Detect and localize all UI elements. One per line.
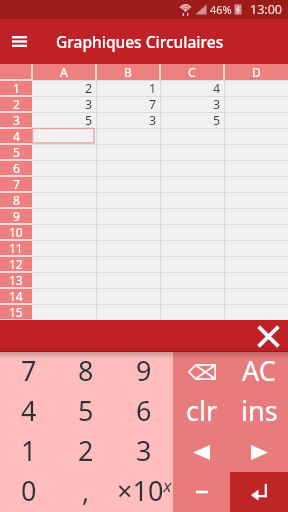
staticText: 4	[13, 128, 20, 144]
staticText: ,	[82, 472, 90, 509]
staticText: 6	[136, 392, 152, 429]
staticText: AC	[242, 352, 276, 389]
button[interactable]: 3	[0, 112, 32, 128]
staticText: 8	[78, 352, 94, 389]
staticText: B	[124, 64, 132, 80]
button[interactable]: 5	[32, 112, 96, 128]
button[interactable]: 5	[57, 392, 115, 432]
button[interactable]: 15	[0, 304, 32, 320]
staticText: 0	[21, 472, 37, 509]
button[interactable]: 4	[160, 80, 224, 96]
staticText: clr	[186, 392, 218, 429]
staticText: 13:00	[250, 1, 282, 18]
staticText: 1	[21, 432, 37, 469]
button[interactable]: AC	[230, 352, 288, 392]
staticText: 1	[13, 80, 20, 96]
button[interactable]: ,	[57, 472, 115, 512]
staticText: 46%	[210, 2, 232, 17]
staticText: 14	[9, 288, 23, 304]
staticText: C	[188, 64, 196, 80]
staticText: 5	[13, 144, 20, 160]
button[interactable]: Minus	[173, 472, 230, 512]
button[interactable]: B	[96, 64, 160, 80]
staticText: 7	[13, 176, 20, 192]
staticText: ins	[241, 392, 278, 429]
button[interactable]: ins	[230, 392, 288, 432]
button[interactable]: 7	[96, 96, 160, 112]
button[interactable]: 3	[32, 96, 96, 112]
staticText: 2	[85, 80, 93, 96]
staticText: 3	[149, 112, 157, 128]
staticText: 3	[13, 112, 20, 128]
staticText: 4	[213, 80, 221, 96]
button[interactable]: 2	[57, 432, 115, 472]
staticText: 11	[9, 240, 23, 256]
button[interactable]: C	[160, 64, 224, 80]
button[interactable]: 1	[0, 432, 57, 472]
button[interactable]: 7	[0, 176, 32, 192]
button[interactable]: ×10x	[115, 472, 173, 512]
staticText: 7	[149, 96, 157, 112]
button[interactable]: 0	[0, 472, 57, 512]
staticText: 13	[9, 272, 23, 288]
button[interactable]: 4	[0, 392, 57, 432]
button[interactable]: Move right	[230, 432, 288, 472]
button[interactable]: A	[32, 64, 96, 80]
button[interactable]: 8	[0, 192, 32, 208]
staticText: 6	[13, 160, 20, 176]
staticText: 4	[21, 392, 37, 429]
staticText: 5	[78, 392, 94, 429]
button[interactable]: 11	[0, 240, 32, 256]
staticText: ×10x	[117, 472, 172, 509]
button[interactable]: 1	[0, 80, 32, 96]
button[interactable]: 8	[57, 352, 115, 392]
staticText: 5	[85, 112, 93, 128]
staticText: Graphiques Circulaires	[56, 31, 224, 52]
button[interactable]: 12	[0, 256, 32, 272]
button[interactable]: 2	[32, 80, 96, 96]
button[interactable]: 9	[0, 208, 32, 224]
button[interactable]: 3	[115, 432, 173, 472]
staticText: 10	[9, 224, 23, 240]
button[interactable]: 6	[115, 392, 173, 432]
button[interactable]: 5	[0, 144, 32, 160]
button[interactable]: 3	[160, 96, 224, 112]
staticText: 12	[9, 256, 23, 272]
button[interactable]: 4	[0, 128, 32, 144]
button[interactable]: 2	[0, 96, 32, 112]
button[interactable]: Menu	[4, 26, 35, 57]
staticText: 9	[136, 352, 152, 389]
staticText: 15	[9, 304, 23, 320]
staticText: 2	[13, 96, 20, 112]
button[interactable]: 13	[0, 272, 32, 288]
staticText: 8	[13, 192, 20, 208]
button[interactable]: 14	[0, 288, 32, 304]
staticText: 1	[149, 80, 157, 96]
staticText: 3	[85, 96, 93, 112]
button[interactable]: 5	[160, 112, 224, 128]
staticText: 3	[136, 432, 152, 469]
button[interactable]: Enter	[230, 472, 288, 512]
button[interactable]: 3	[96, 112, 160, 128]
staticText: A	[60, 64, 68, 80]
button[interactable]: Backspace	[173, 352, 230, 392]
button[interactable]: Move left	[173, 432, 230, 472]
button[interactable]: 7	[0, 352, 57, 392]
button[interactable]: 10	[0, 224, 32, 240]
staticText: 9	[13, 208, 20, 224]
staticText: 2	[78, 432, 94, 469]
staticText: D	[252, 64, 261, 80]
button[interactable]: Close	[253, 321, 283, 351]
staticText: 7	[21, 352, 37, 389]
button[interactable]: clr	[173, 392, 230, 432]
staticText: 5	[213, 112, 221, 128]
button[interactable]: 9	[115, 352, 173, 392]
button[interactable]: D	[224, 64, 288, 80]
button[interactable]: 1	[96, 80, 160, 96]
button[interactable]: 6	[0, 160, 32, 176]
staticText: 3	[213, 96, 221, 112]
